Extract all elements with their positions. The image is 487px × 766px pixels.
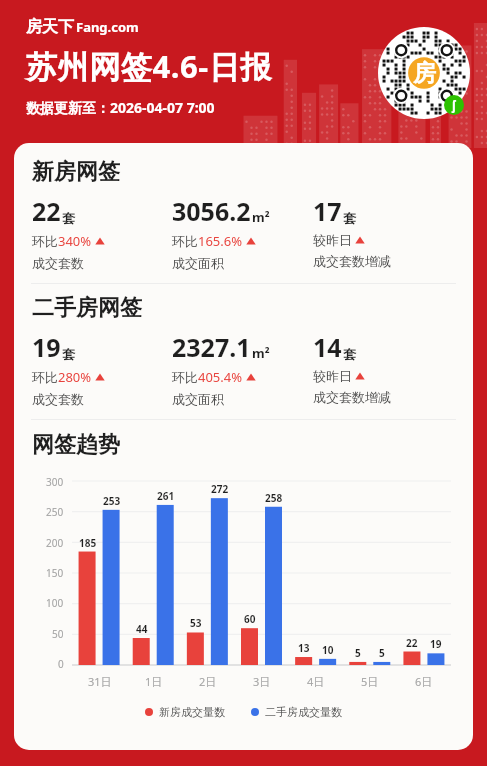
staticText: 苏州网签4.6-日报 (26, 45, 273, 87)
button[interactable]: 新房成交量数 (145, 705, 225, 719)
staticText: 较昨日 (313, 232, 352, 248)
staticText: 环比 (172, 233, 198, 249)
staticText: 套 (343, 210, 356, 226)
staticText: 成交套数增减 (313, 253, 391, 269)
staticText: 280% (58, 368, 92, 386)
staticText: 272 (211, 482, 229, 496)
staticText: 405.4% (198, 368, 243, 386)
staticText: 环比 (172, 369, 198, 385)
staticText: 44 (136, 622, 148, 636)
staticText: 53 (190, 616, 202, 630)
staticText: 17 (313, 194, 342, 228)
staticText: 数据更新至：2026-04-07 7:00 (26, 98, 215, 117)
staticText: 14 (313, 330, 342, 364)
staticText: 成交套数 (32, 255, 84, 271)
staticText: 新房网签 (32, 158, 120, 186)
staticText: 261 (157, 489, 175, 503)
staticText: 房 (413, 59, 436, 88)
staticText: Fang.com (76, 18, 139, 36)
staticText: 300 (46, 475, 64, 489)
staticText: 二手房网签 (32, 294, 142, 322)
staticText: 150 (46, 566, 64, 580)
staticText: 4日 (307, 674, 325, 689)
staticText: 60 (244, 612, 256, 626)
button[interactable]: 二手房成交量数 (251, 705, 342, 719)
staticText: ʃ (452, 97, 456, 113)
staticText: 套 (62, 210, 75, 226)
staticText: 套 (343, 346, 356, 362)
staticText: m² (252, 344, 270, 362)
staticText: 5 (355, 646, 361, 660)
button[interactable]: 扫描二维码关注房天下 (378, 27, 470, 119)
staticText: 2327.1 (172, 330, 251, 364)
staticText: 13 (298, 641, 310, 655)
staticText: 环比 (32, 369, 58, 385)
staticText: 新房成交量数 (159, 705, 225, 719)
staticText: 房天下 (26, 17, 74, 37)
staticText: 19 (32, 330, 61, 364)
staticText: 1日 (145, 674, 163, 689)
staticText: 10 (322, 643, 334, 657)
staticText: 100 (46, 596, 64, 610)
staticText: 253 (103, 494, 121, 508)
button[interactable]: 新房网签 (14, 158, 473, 271)
staticText: 成交面积 (172, 255, 224, 271)
staticText: 340% (58, 232, 92, 250)
staticText: 2日 (199, 674, 217, 689)
staticText: 套 (62, 346, 75, 362)
staticText: m² (252, 208, 270, 226)
staticText: 258 (265, 491, 283, 505)
staticText: 环比 (32, 233, 58, 249)
button[interactable]: 房天下 (26, 17, 139, 37)
staticText: 二手房成交量数 (265, 705, 342, 719)
staticText: 5 (379, 646, 385, 660)
button[interactable]: 二手房网签 (14, 294, 473, 407)
staticText: 250 (46, 505, 64, 519)
staticText: 0 (58, 657, 64, 671)
staticText: 165.6% (198, 232, 243, 250)
staticText: 6日 (415, 674, 433, 689)
staticText: 31日 (88, 674, 112, 689)
staticText: 3056.2 (172, 194, 251, 228)
staticText: 成交套数增减 (313, 389, 391, 405)
staticText: 3日 (253, 674, 271, 689)
staticText: 22 (32, 194, 61, 228)
staticText: 50 (52, 627, 64, 641)
staticText: 19 (430, 637, 442, 651)
staticText: 成交面积 (172, 391, 224, 407)
staticText: 200 (46, 536, 64, 550)
staticText: 成交套数 (32, 391, 84, 407)
staticText: 网签趋势 (32, 431, 120, 459)
staticText: 22 (406, 636, 418, 650)
staticText: 5日 (361, 674, 379, 689)
staticText: 较昨日 (313, 368, 352, 384)
staticText: 185 (79, 536, 97, 550)
